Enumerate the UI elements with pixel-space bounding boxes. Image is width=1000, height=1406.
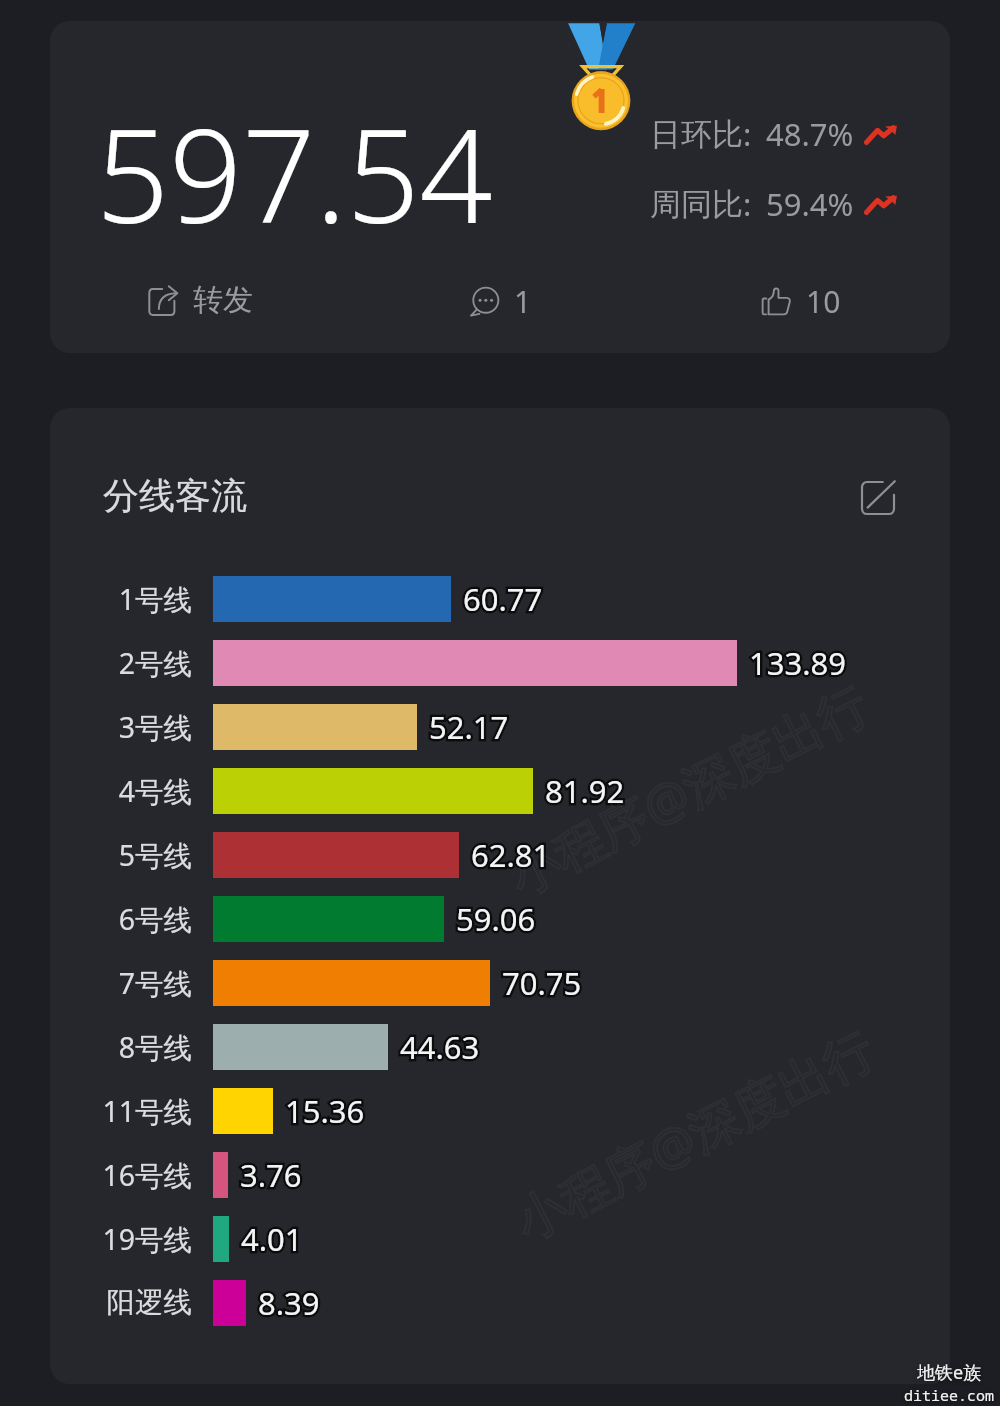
staticText: 62.81 bbox=[471, 834, 551, 876]
staticText: 日环比 bbox=[650, 115, 743, 154]
staticText: 62.81 bbox=[471, 834, 551, 876]
staticText: 60.77 bbox=[463, 578, 543, 620]
button[interactable]: 1号线 bbox=[50, 576, 950, 640]
staticText: 44.63 bbox=[400, 1026, 480, 1068]
staticText: 4号线 bbox=[118, 772, 192, 811]
button[interactable]: 编辑 bbox=[853, 473, 903, 523]
staticText: 70.75 bbox=[502, 962, 582, 1004]
staticText: 59.06 bbox=[456, 898, 536, 940]
staticText: 3号线 bbox=[118, 708, 192, 747]
staticText: 周同比 bbox=[650, 185, 743, 224]
staticText: 6号线 bbox=[118, 900, 192, 939]
staticText: 60.77 bbox=[463, 578, 543, 620]
button[interactable]: 8号线 bbox=[50, 1024, 950, 1088]
button[interactable]: 7号线 bbox=[50, 960, 950, 1024]
button[interactable]: 10 bbox=[650, 281, 950, 322]
staticText: 分线客流 bbox=[103, 473, 247, 518]
staticText: 10 bbox=[806, 281, 841, 322]
staticText: 48.7% bbox=[766, 113, 854, 155]
staticText: : bbox=[743, 183, 752, 225]
staticText: 4.01 bbox=[241, 1218, 303, 1260]
staticText: 小程序@深度出行 bbox=[497, 669, 879, 909]
staticText: 8.39 bbox=[258, 1282, 320, 1324]
button[interactable]: 6号线 bbox=[50, 896, 950, 960]
staticText: 81.92 bbox=[545, 770, 625, 812]
staticText: 15.36 bbox=[285, 1090, 365, 1132]
staticText: 44.63 bbox=[400, 1026, 480, 1068]
staticText: 1 bbox=[514, 281, 532, 322]
button[interactable]: 阳逻线 bbox=[50, 1280, 950, 1344]
staticText: 59.4% bbox=[766, 183, 854, 225]
staticText: 19号线 bbox=[102, 1220, 192, 1259]
button[interactable]: 3号线 bbox=[50, 704, 950, 768]
staticText: 7号线 bbox=[118, 964, 192, 1003]
staticText: 11号线 bbox=[102, 1092, 192, 1131]
staticText: 70.75 bbox=[502, 962, 582, 1004]
staticText: 133.89 bbox=[749, 642, 846, 684]
staticText: 59.06 bbox=[456, 898, 536, 940]
staticText: : bbox=[743, 113, 752, 155]
staticText: 4.01 bbox=[241, 1218, 303, 1260]
staticText: 1号线 bbox=[118, 580, 192, 619]
staticText: 8.39 bbox=[258, 1282, 320, 1324]
staticText: 52.17 bbox=[429, 706, 509, 748]
button[interactable]: 16号线 bbox=[50, 1152, 950, 1216]
button[interactable]: 11号线 bbox=[50, 1088, 950, 1152]
staticText: 597.54 bbox=[96, 86, 493, 260]
staticText: 8号线 bbox=[118, 1028, 192, 1067]
button[interactable]: 转发 bbox=[50, 281, 350, 319]
staticText: 81.92 bbox=[545, 770, 625, 812]
staticText: 地铁e族 bbox=[917, 1360, 982, 1385]
staticText: 3.76 bbox=[240, 1154, 302, 1196]
button[interactable]: 4号线 bbox=[50, 768, 950, 832]
staticText: 52.17 bbox=[429, 706, 509, 748]
staticText: 15.36 bbox=[285, 1090, 365, 1132]
staticText: 5号线 bbox=[118, 836, 192, 875]
button[interactable]: 19号线 bbox=[50, 1216, 950, 1280]
staticText: 阳逻线 bbox=[106, 1285, 192, 1321]
staticText: 133.89 bbox=[749, 642, 846, 684]
staticText: 转发 bbox=[193, 281, 253, 319]
staticText: 3.76 bbox=[240, 1154, 302, 1196]
button[interactable]: 5号线 bbox=[50, 832, 950, 896]
button[interactable]: 1 bbox=[350, 281, 650, 322]
staticText: 16号线 bbox=[102, 1156, 192, 1195]
staticText: 2号线 bbox=[118, 644, 192, 683]
button[interactable]: 2号线 bbox=[50, 640, 950, 704]
staticText: ditiee.com bbox=[904, 1385, 995, 1405]
